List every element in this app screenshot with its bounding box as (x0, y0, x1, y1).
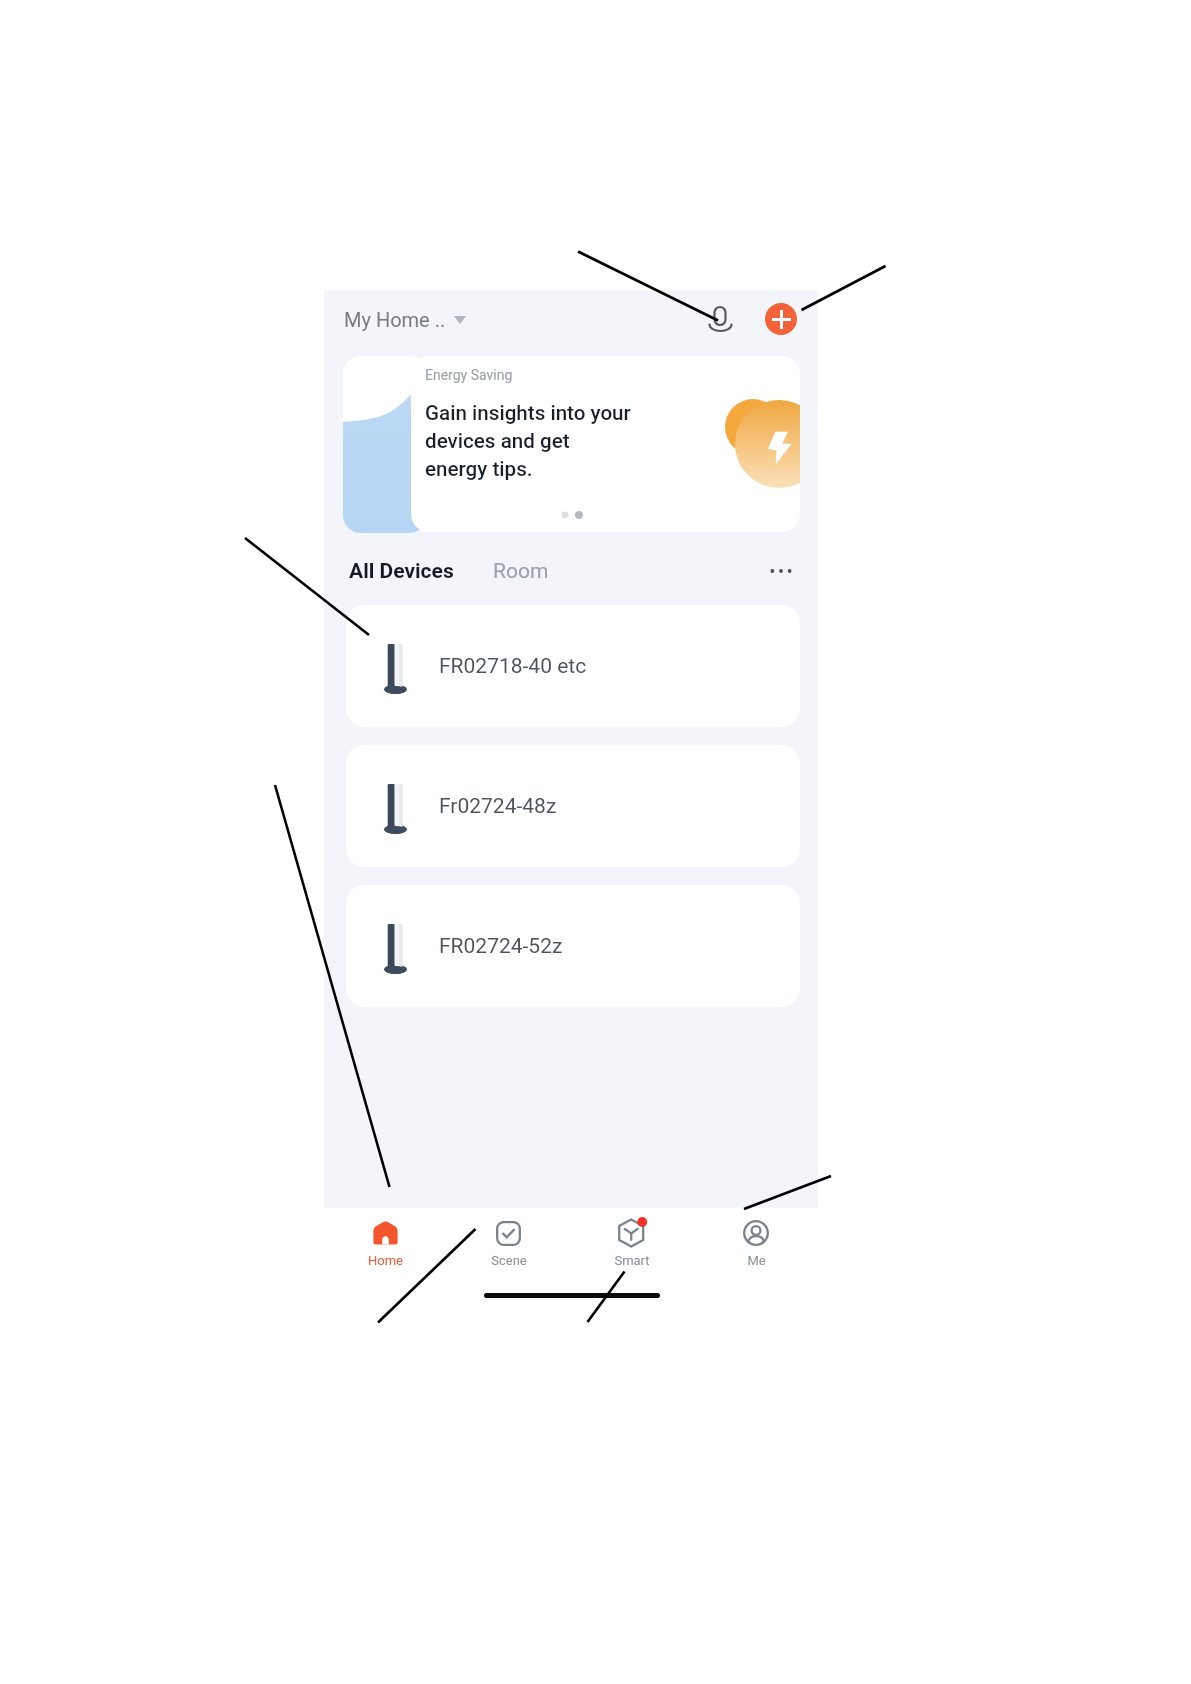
staticText: Energy Saving (425, 367, 513, 383)
staticText: My Home .. (344, 308, 446, 331)
staticText: FR02718-40 etc (439, 654, 587, 679)
button[interactable]: My Home .. (344, 308, 466, 331)
button[interactable]: Add device (765, 303, 797, 335)
button[interactable]: More options (766, 556, 796, 586)
staticText: Home (368, 1253, 403, 1268)
button[interactable]: Home (324, 1208, 447, 1274)
staticText: Smart (614, 1253, 650, 1268)
button[interactable]: FR02724-52z (346, 885, 800, 1007)
button[interactable]: All Devices (349, 559, 454, 584)
button[interactable]: Scene (447, 1208, 570, 1274)
staticText: Scene (491, 1253, 527, 1268)
staticText: Fr02724-48z (439, 794, 557, 819)
button[interactable]: Fr02724-48z (346, 745, 800, 867)
button[interactable]: Voice assistant (702, 301, 738, 337)
button[interactable]: Me (694, 1208, 818, 1274)
button[interactable]: Room (493, 559, 549, 584)
staticText: Me (747, 1253, 766, 1268)
staticText: Gain insights into your devices and get … (425, 401, 631, 481)
button[interactable]: Smart (570, 1208, 694, 1274)
button[interactable]: FR02718-40 etc (346, 605, 800, 727)
button[interactable]: Energy Saving (411, 356, 800, 532)
staticText: FR02724-52z (439, 934, 563, 959)
